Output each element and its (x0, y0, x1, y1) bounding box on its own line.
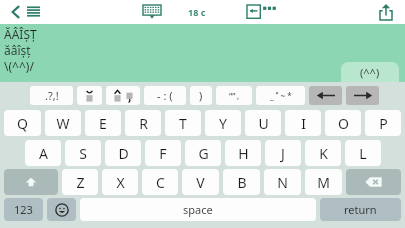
staticText: I (301, 114, 306, 133)
staticText: T (179, 114, 187, 133)
button[interactable]: H (225, 140, 261, 166)
button[interactable]: Z (62, 169, 98, 195)
button[interactable]: Q (4, 110, 41, 136)
staticText: G (198, 144, 209, 163)
staticText: A (39, 144, 48, 163)
button[interactable]: Share (375, 1, 397, 23)
staticText: U (258, 114, 269, 133)
button[interactable]: space (80, 198, 316, 221)
staticText: _ ‘’ ~ * (270, 90, 292, 101)
button[interactable]: K (305, 140, 341, 166)
button[interactable]: D (105, 140, 141, 166)
staticText: L (359, 144, 367, 163)
button[interactable]: F (145, 140, 181, 166)
button[interactable]: L (345, 140, 381, 166)
staticText: E (99, 114, 107, 133)
staticText: R (139, 114, 148, 133)
staticText: V (196, 173, 205, 192)
button[interactable]: U (245, 110, 281, 136)
button[interactable]: E (85, 110, 121, 136)
staticText: ăâîșț (4, 42, 31, 58)
staticText: Y (219, 114, 227, 133)
button[interactable]: P (365, 110, 401, 136)
staticText: 123 (14, 202, 33, 217)
button[interactable]: A (25, 140, 61, 166)
staticText: N (277, 173, 288, 192)
staticText: J (281, 144, 285, 163)
staticText: , (237, 90, 240, 101)
button[interactable]: Move right (346, 86, 379, 105)
staticText: H (238, 144, 249, 163)
button[interactable]: X (102, 169, 138, 195)
button[interactable]: J (265, 140, 301, 166)
staticText: ĂÂÎȘȚ (4, 26, 37, 42)
button[interactable]: Keyboard (140, 0, 164, 24)
button[interactable]: R (125, 110, 161, 136)
button[interactable]: V (182, 169, 219, 195)
button[interactable]: return (320, 198, 401, 221)
button[interactable]: Emoji (47, 198, 76, 221)
button[interactable]: N (264, 169, 301, 195)
staticText: X (116, 173, 125, 192)
button[interactable]: “” (216, 86, 252, 105)
button[interactable]: breve accent (77, 86, 102, 105)
staticText: F (159, 144, 167, 163)
button[interactable]: Insert (247, 0, 275, 24)
staticText: P (379, 114, 388, 133)
button[interactable]: B (223, 169, 260, 195)
button[interactable]: _ ‘’ ~ * (256, 86, 305, 105)
staticText: O (338, 114, 349, 133)
staticText: C (156, 173, 165, 192)
button[interactable]: .?,! (30, 86, 73, 105)
button[interactable]: 123 (4, 198, 43, 221)
staticText: Z (76, 173, 85, 192)
button[interactable]: (^^) (341, 62, 399, 82)
staticText: B (237, 173, 247, 192)
button[interactable]: G (185, 140, 221, 166)
staticText: Q (17, 114, 28, 133)
button[interactable]: S (65, 140, 101, 166)
button[interactable]: Backspace (346, 169, 401, 195)
button[interactable]: Move left (309, 86, 342, 105)
staticText: (^^) (360, 65, 380, 80)
staticText: W (56, 114, 70, 133)
staticText: “” (229, 90, 236, 102)
staticText: M (317, 173, 330, 192)
button[interactable]: T (165, 110, 201, 136)
button[interactable]: W (45, 110, 81, 136)
staticText: - : ( (157, 88, 173, 103)
button[interactable]: Y (205, 110, 241, 136)
button[interactable]: - : ( (144, 86, 186, 105)
staticText: \(^^)/ (4, 58, 34, 74)
button[interactable]: Back (6, 2, 26, 22)
button[interactable]: Shift (4, 169, 58, 195)
staticText: K (319, 144, 328, 163)
button[interactable]: List (23, 2, 43, 22)
button[interactable]: O (325, 110, 361, 136)
staticText: D (118, 144, 129, 163)
staticText: ) (199, 88, 203, 103)
button[interactable]: circumflex accent (106, 86, 140, 105)
staticText: 18 c (188, 6, 206, 18)
staticText: S (79, 144, 87, 163)
button[interactable]: C (142, 169, 178, 195)
button[interactable]: M (305, 169, 342, 195)
staticText: space (183, 202, 213, 217)
staticText: return (344, 202, 377, 217)
button[interactable]: ) (190, 86, 212, 105)
button[interactable]: I (285, 110, 321, 136)
staticText: .?,! (45, 88, 59, 103)
